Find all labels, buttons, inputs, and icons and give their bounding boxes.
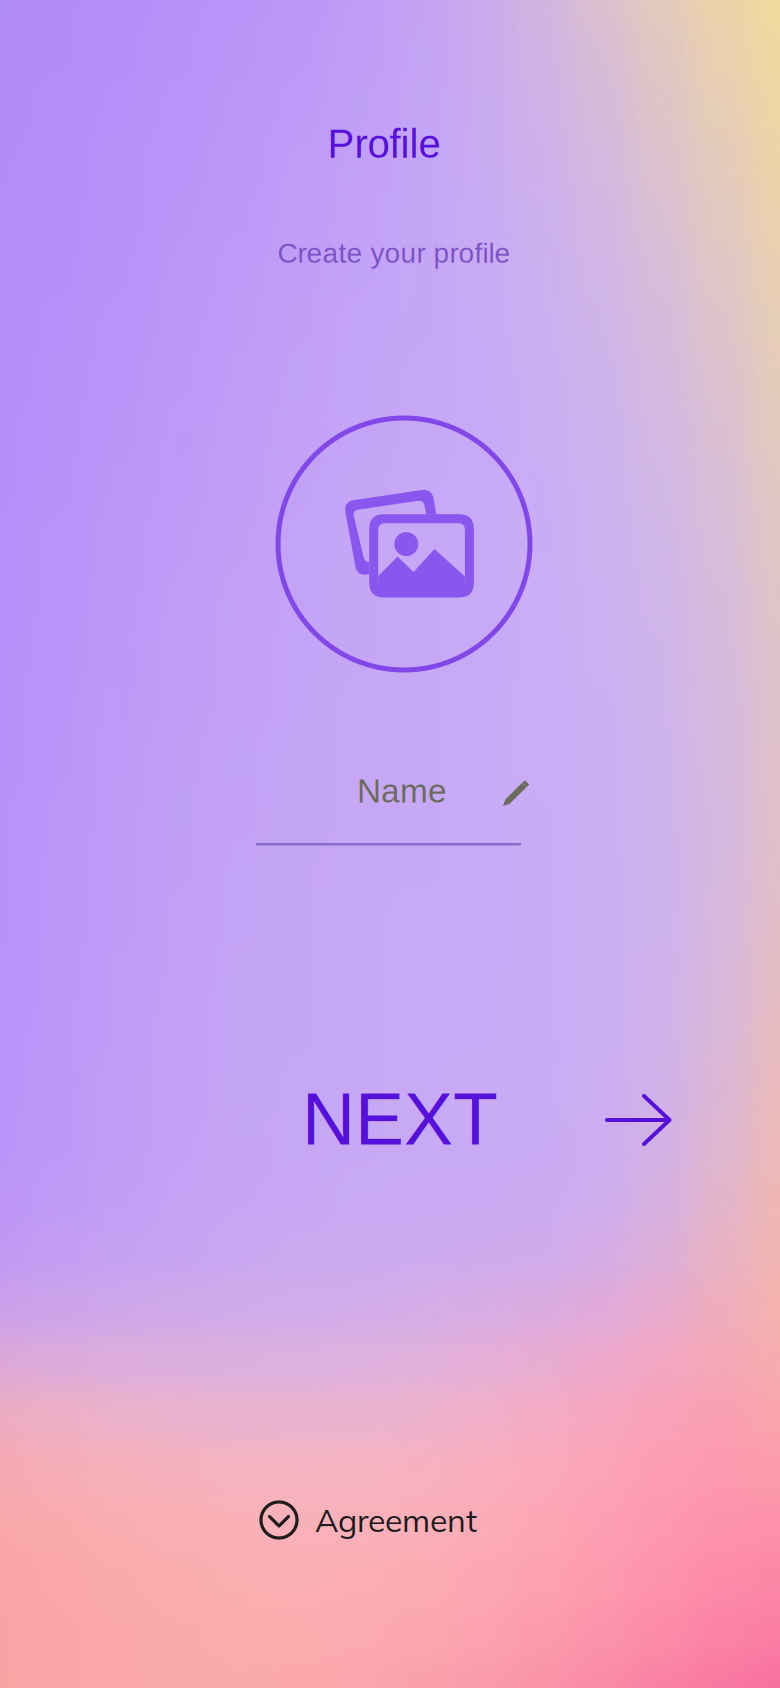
staticText: Profile <box>327 122 440 166</box>
staticText: Agreement <box>315 1500 477 1540</box>
staticText: Create your profile <box>277 237 510 269</box>
button[interactable]: Choose profile photo <box>274 414 534 674</box>
button[interactable]: Agreement <box>259 1496 477 1544</box>
staticText: Name <box>357 772 447 810</box>
button[interactable]: NEXT <box>302 1074 672 1164</box>
button[interactable]: Name <box>256 772 546 852</box>
staticText: NEXT <box>302 1078 498 1160</box>
